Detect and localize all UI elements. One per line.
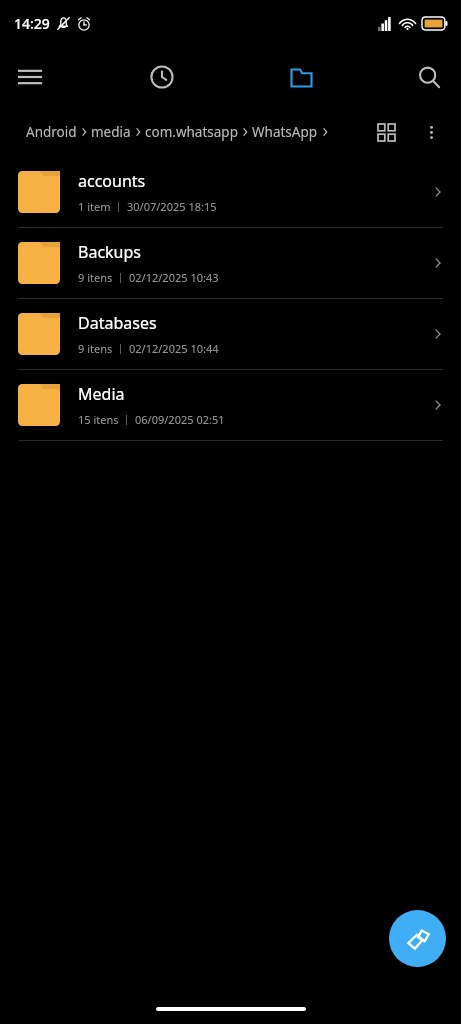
button[interactable]: Clean up: [389, 910, 446, 967]
button[interactable]: Search: [405, 53, 453, 101]
staticText: accounts: [78, 170, 146, 192]
staticText: 14:29: [14, 14, 50, 33]
staticText: 1 item: [78, 199, 111, 214]
staticText: 06/09/2025 02:51: [135, 412, 225, 427]
button[interactable]: Media: [0, 370, 461, 441]
staticText: media: [91, 123, 131, 141]
button[interactable]: Databases: [0, 299, 461, 370]
staticText: 02/12/2025 10:44: [129, 341, 219, 356]
button[interactable]: accounts: [0, 157, 461, 228]
button[interactable]: Backups: [0, 228, 461, 299]
button[interactable]: Grid view: [366, 112, 406, 152]
staticText: 15 itens: [78, 412, 119, 427]
staticText: Databases: [78, 312, 157, 334]
staticText: 9 itens: [78, 341, 113, 356]
staticText: WhatsApp: [252, 123, 318, 141]
staticText: 02/12/2025 10:43: [129, 270, 219, 285]
staticText: com.whatsapp: [145, 123, 238, 141]
staticText: 9 itens: [78, 270, 113, 285]
staticText: 30/07/2025 18:15: [127, 199, 217, 214]
staticText: Media: [78, 383, 125, 405]
button[interactable]: Folders: [277, 53, 325, 101]
button[interactable]: Recent: [138, 53, 186, 101]
button[interactable]: Android: [26, 123, 332, 141]
staticText: Backups: [78, 241, 141, 263]
button[interactable]: More options: [411, 112, 451, 152]
button[interactable]: Menu: [6, 53, 54, 101]
staticText: Android: [26, 123, 77, 141]
